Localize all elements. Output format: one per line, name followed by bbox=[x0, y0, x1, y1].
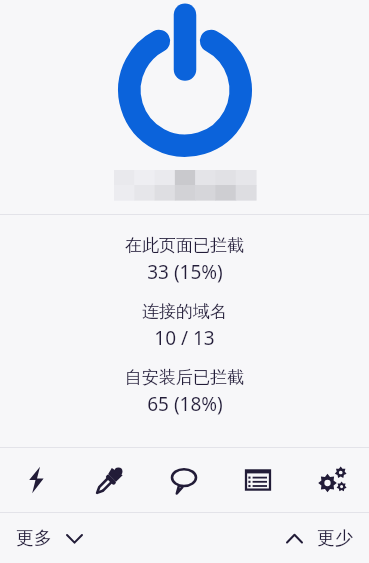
button[interactable]: Block element picker mode bbox=[0, 448, 73, 512]
staticText: 10 / 13 bbox=[154, 325, 215, 351]
staticText: 33 (15%) bbox=[147, 259, 223, 285]
button[interactable]: Settings bbox=[295, 448, 369, 512]
button[interactable]: Element picker bbox=[73, 448, 147, 512]
button[interactable]: Report an issue bbox=[147, 448, 221, 512]
button[interactable]: Toggle blocking for this site bbox=[0, 0, 369, 156]
staticText: 自安装后已拦截 bbox=[125, 367, 244, 388]
staticText: 在此页面已拦截 bbox=[125, 235, 244, 256]
staticText: 65 (18%) bbox=[147, 391, 223, 417]
staticText: 更多 bbox=[16, 527, 52, 550]
button[interactable]: 更少 bbox=[270, 521, 369, 556]
button[interactable]: Logger bbox=[221, 448, 295, 512]
staticText: 更少 bbox=[317, 527, 353, 550]
staticText: 连接的域名 bbox=[142, 301, 227, 322]
button[interactable]: 更多 bbox=[0, 521, 99, 556]
